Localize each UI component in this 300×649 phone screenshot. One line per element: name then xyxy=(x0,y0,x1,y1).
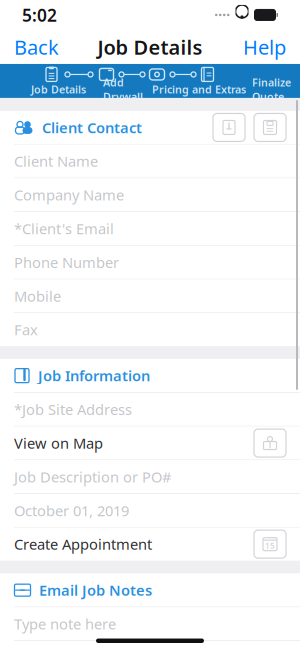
staticText: *Client's Email xyxy=(14,219,114,238)
button[interactable]: View on Map xyxy=(0,427,300,460)
staticText: View on Map xyxy=(14,433,103,453)
staticText: Company Name xyxy=(14,185,124,205)
staticText: Phone Number xyxy=(14,252,119,272)
staticText: Fax xyxy=(14,320,38,339)
button[interactable]: *Job Site Address xyxy=(0,393,300,427)
staticText: Client Contact xyxy=(42,118,142,137)
staticText: Help xyxy=(243,34,286,60)
button[interactable]: *Client's Email xyxy=(0,212,300,246)
staticText: Type note here xyxy=(14,614,116,634)
button[interactable]: Phone Number xyxy=(0,246,300,279)
staticText: Pricing and Extras xyxy=(152,82,246,97)
staticText: October 01, 2019 xyxy=(14,501,129,520)
button[interactable]: Mobile xyxy=(0,279,300,313)
button[interactable]: Job Description or PO# xyxy=(0,460,300,494)
staticText: Finalize Quote xyxy=(252,75,291,104)
staticText: Create Appointment xyxy=(14,534,152,554)
staticText: Email Job Notes xyxy=(39,580,152,600)
staticText: Job Details xyxy=(31,82,86,97)
staticText: Client Name xyxy=(14,151,98,171)
staticText: Job Information xyxy=(38,366,150,385)
staticText: Back xyxy=(14,34,59,60)
button[interactable]: Save contact xyxy=(254,113,286,141)
button[interactable]: Create Appointment xyxy=(0,528,300,561)
staticText: 5:02 xyxy=(22,3,57,26)
button[interactable]: Company Name xyxy=(0,178,300,212)
button[interactable]: Fax xyxy=(0,313,300,346)
button[interactable]: Import contact xyxy=(213,113,245,141)
staticText: Job Description or PO# xyxy=(14,467,171,486)
button[interactable]: October 01, 2019 xyxy=(0,494,300,528)
button[interactable]: Client Name xyxy=(0,145,300,178)
button[interactable]: Create Appointment xyxy=(254,530,286,558)
staticText: Add Drywall xyxy=(103,75,143,104)
staticText: Job Details xyxy=(97,34,202,60)
staticText: 15 xyxy=(265,540,275,551)
staticText: *Job Site Address xyxy=(14,400,132,419)
button[interactable]: Back xyxy=(0,30,73,64)
button[interactable]: View on Map xyxy=(254,429,286,457)
button[interactable]: Help xyxy=(229,30,300,64)
staticText: Mobile xyxy=(14,286,61,306)
button[interactable]: Type note here xyxy=(0,607,300,641)
